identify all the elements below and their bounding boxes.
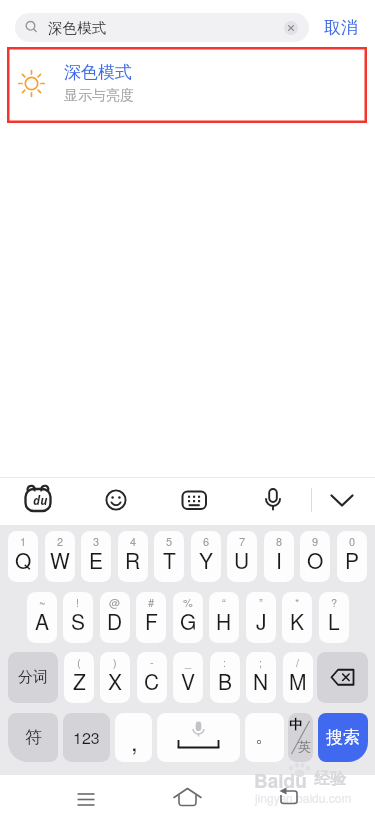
staticText: K bbox=[290, 606, 305, 636]
button[interactable]: 0 bbox=[337, 531, 367, 582]
button[interactable]: 中 bbox=[288, 713, 313, 762]
staticText: 5 bbox=[166, 533, 173, 549]
staticText: 搜索 bbox=[326, 727, 360, 748]
button[interactable]: ? bbox=[319, 592, 349, 643]
button[interactable]: 搜索 bbox=[318, 713, 368, 762]
button[interactable]: 6 bbox=[191, 531, 221, 582]
staticText: B bbox=[218, 666, 233, 696]
staticText: 深色模式 bbox=[64, 62, 132, 83]
staticText: O bbox=[307, 545, 324, 575]
button[interactable]: ! bbox=[63, 592, 93, 643]
staticText: C bbox=[144, 666, 160, 696]
staticText: ? bbox=[331, 594, 338, 610]
staticText: ( bbox=[77, 654, 81, 670]
button[interactable]: 取消 bbox=[318, 13, 364, 41]
button[interactable]: 深色模式 bbox=[7, 47, 367, 123]
staticText: ! bbox=[76, 594, 80, 610]
button[interactable] bbox=[317, 652, 368, 703]
staticText: Y bbox=[199, 545, 214, 575]
staticText: 4 bbox=[130, 533, 137, 549]
staticText: 8 bbox=[276, 533, 283, 549]
staticText: 取消 bbox=[324, 17, 358, 38]
staticText: “ bbox=[222, 594, 226, 610]
staticText: 符 bbox=[25, 727, 42, 748]
staticText: du bbox=[33, 492, 48, 508]
staticText: 。 bbox=[255, 724, 274, 748]
button[interactable]: : bbox=[210, 652, 240, 703]
staticText: V bbox=[181, 666, 196, 696]
staticText: jingyan.baidu.com bbox=[255, 789, 352, 806]
staticText: 中 bbox=[289, 716, 302, 732]
button[interactable]: 深色模式 bbox=[15, 13, 309, 42]
button[interactable] bbox=[101, 485, 131, 515]
staticText: G bbox=[180, 606, 197, 636]
staticText: P bbox=[345, 545, 360, 575]
staticText: * bbox=[295, 594, 300, 610]
button[interactable]: 7 bbox=[227, 531, 257, 582]
button[interactable]: 4 bbox=[118, 531, 148, 582]
button[interactable]: 5 bbox=[154, 531, 184, 582]
staticText: 深色模式 bbox=[48, 19, 106, 37]
staticText: L bbox=[328, 606, 340, 636]
button[interactable]: 符 bbox=[8, 713, 58, 762]
button[interactable] bbox=[179, 485, 209, 515]
staticText: ” bbox=[259, 594, 263, 610]
staticText: 7 bbox=[239, 533, 246, 549]
button[interactable] bbox=[284, 21, 298, 35]
button[interactable]: ) bbox=[100, 652, 130, 703]
button[interactable]: ” bbox=[246, 592, 276, 643]
button[interactable]: # bbox=[136, 592, 166, 643]
button[interactable]: , bbox=[115, 713, 152, 762]
staticText: , bbox=[131, 723, 138, 757]
staticText: M bbox=[289, 666, 307, 696]
button[interactable] bbox=[328, 486, 356, 514]
staticText: U bbox=[234, 545, 250, 575]
button[interactable]: 2 bbox=[45, 531, 75, 582]
button[interactable]: _ bbox=[173, 652, 203, 703]
button[interactable] bbox=[157, 713, 240, 762]
button[interactable]: 分词 bbox=[8, 652, 58, 703]
staticText: D bbox=[107, 606, 123, 636]
button[interactable]: ~ bbox=[27, 592, 57, 643]
staticText: X bbox=[108, 666, 123, 696]
staticText: 分词 bbox=[18, 668, 48, 687]
staticText: ; bbox=[259, 654, 263, 670]
button[interactable]: du bbox=[21, 484, 57, 518]
button[interactable]: 123 bbox=[63, 713, 110, 762]
button[interactable]: % bbox=[173, 592, 203, 643]
staticText: ) bbox=[113, 654, 117, 670]
staticText: A bbox=[35, 606, 50, 636]
staticText: % bbox=[183, 594, 193, 610]
staticText: @ bbox=[109, 594, 121, 610]
staticText: 英 bbox=[298, 738, 311, 754]
button[interactable]: - bbox=[137, 652, 167, 703]
staticText: H bbox=[216, 606, 232, 636]
button[interactable]: ( bbox=[64, 652, 94, 703]
button[interactable]: 1 bbox=[8, 531, 38, 582]
staticText: 显示与亮度 bbox=[64, 87, 134, 105]
button[interactable]: “ bbox=[209, 592, 239, 643]
staticText: I bbox=[276, 545, 282, 575]
staticText: 0 bbox=[349, 533, 356, 549]
staticText: 1 bbox=[20, 533, 27, 549]
button[interactable] bbox=[68, 781, 104, 814]
button[interactable] bbox=[169, 781, 205, 814]
staticText: _ bbox=[185, 654, 192, 670]
button[interactable]: 8 bbox=[264, 531, 294, 582]
staticText: 3 bbox=[93, 533, 100, 549]
staticText: / bbox=[296, 654, 300, 670]
button[interactable]: 9 bbox=[300, 531, 330, 582]
button[interactable] bbox=[258, 485, 288, 515]
button[interactable]: / bbox=[283, 652, 313, 703]
button[interactable]: 。 bbox=[245, 713, 284, 762]
staticText: ~ bbox=[39, 594, 46, 610]
staticText: S bbox=[71, 606, 86, 636]
staticText: N bbox=[253, 666, 269, 696]
button[interactable]: ; bbox=[246, 652, 276, 703]
button[interactable] bbox=[271, 781, 307, 814]
button[interactable]: @ bbox=[100, 592, 130, 643]
staticText: 经验 bbox=[314, 769, 346, 789]
staticText: J bbox=[256, 606, 267, 636]
button[interactable]: 3 bbox=[81, 531, 111, 582]
button[interactable]: * bbox=[282, 592, 312, 643]
